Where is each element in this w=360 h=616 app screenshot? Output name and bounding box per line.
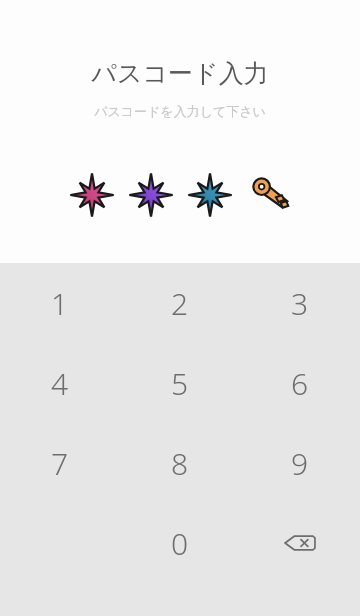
staticText: 7 bbox=[51, 443, 69, 484]
staticText: 0 bbox=[171, 523, 189, 564]
staticText: パスコードを入力して下さい bbox=[0, 103, 360, 119]
staticText: パスコード入力 bbox=[0, 58, 360, 89]
staticText: 6 bbox=[291, 363, 309, 404]
button[interactable]: 4 bbox=[0, 343, 120, 423]
button[interactable]: 8 bbox=[120, 423, 240, 503]
staticText: 2 bbox=[171, 283, 189, 324]
button[interactable]: 7 bbox=[0, 423, 120, 503]
staticText: 8 bbox=[171, 443, 189, 484]
button[interactable]: 9 bbox=[240, 423, 360, 503]
button[interactable]: 0 bbox=[120, 503, 240, 583]
button[interactable]: 5 bbox=[120, 343, 240, 423]
staticText: 5 bbox=[171, 363, 189, 404]
button[interactable]: 3 bbox=[240, 263, 360, 343]
staticText: 4 bbox=[51, 363, 69, 404]
button[interactable]: 1 bbox=[0, 263, 120, 343]
button[interactable]: 6 bbox=[240, 343, 360, 423]
staticText: 1 bbox=[51, 283, 69, 324]
staticText: 9 bbox=[291, 443, 309, 484]
staticText: 3 bbox=[291, 283, 309, 324]
button[interactable]: Backspace bbox=[240, 503, 360, 583]
button[interactable]: 2 bbox=[120, 263, 240, 343]
